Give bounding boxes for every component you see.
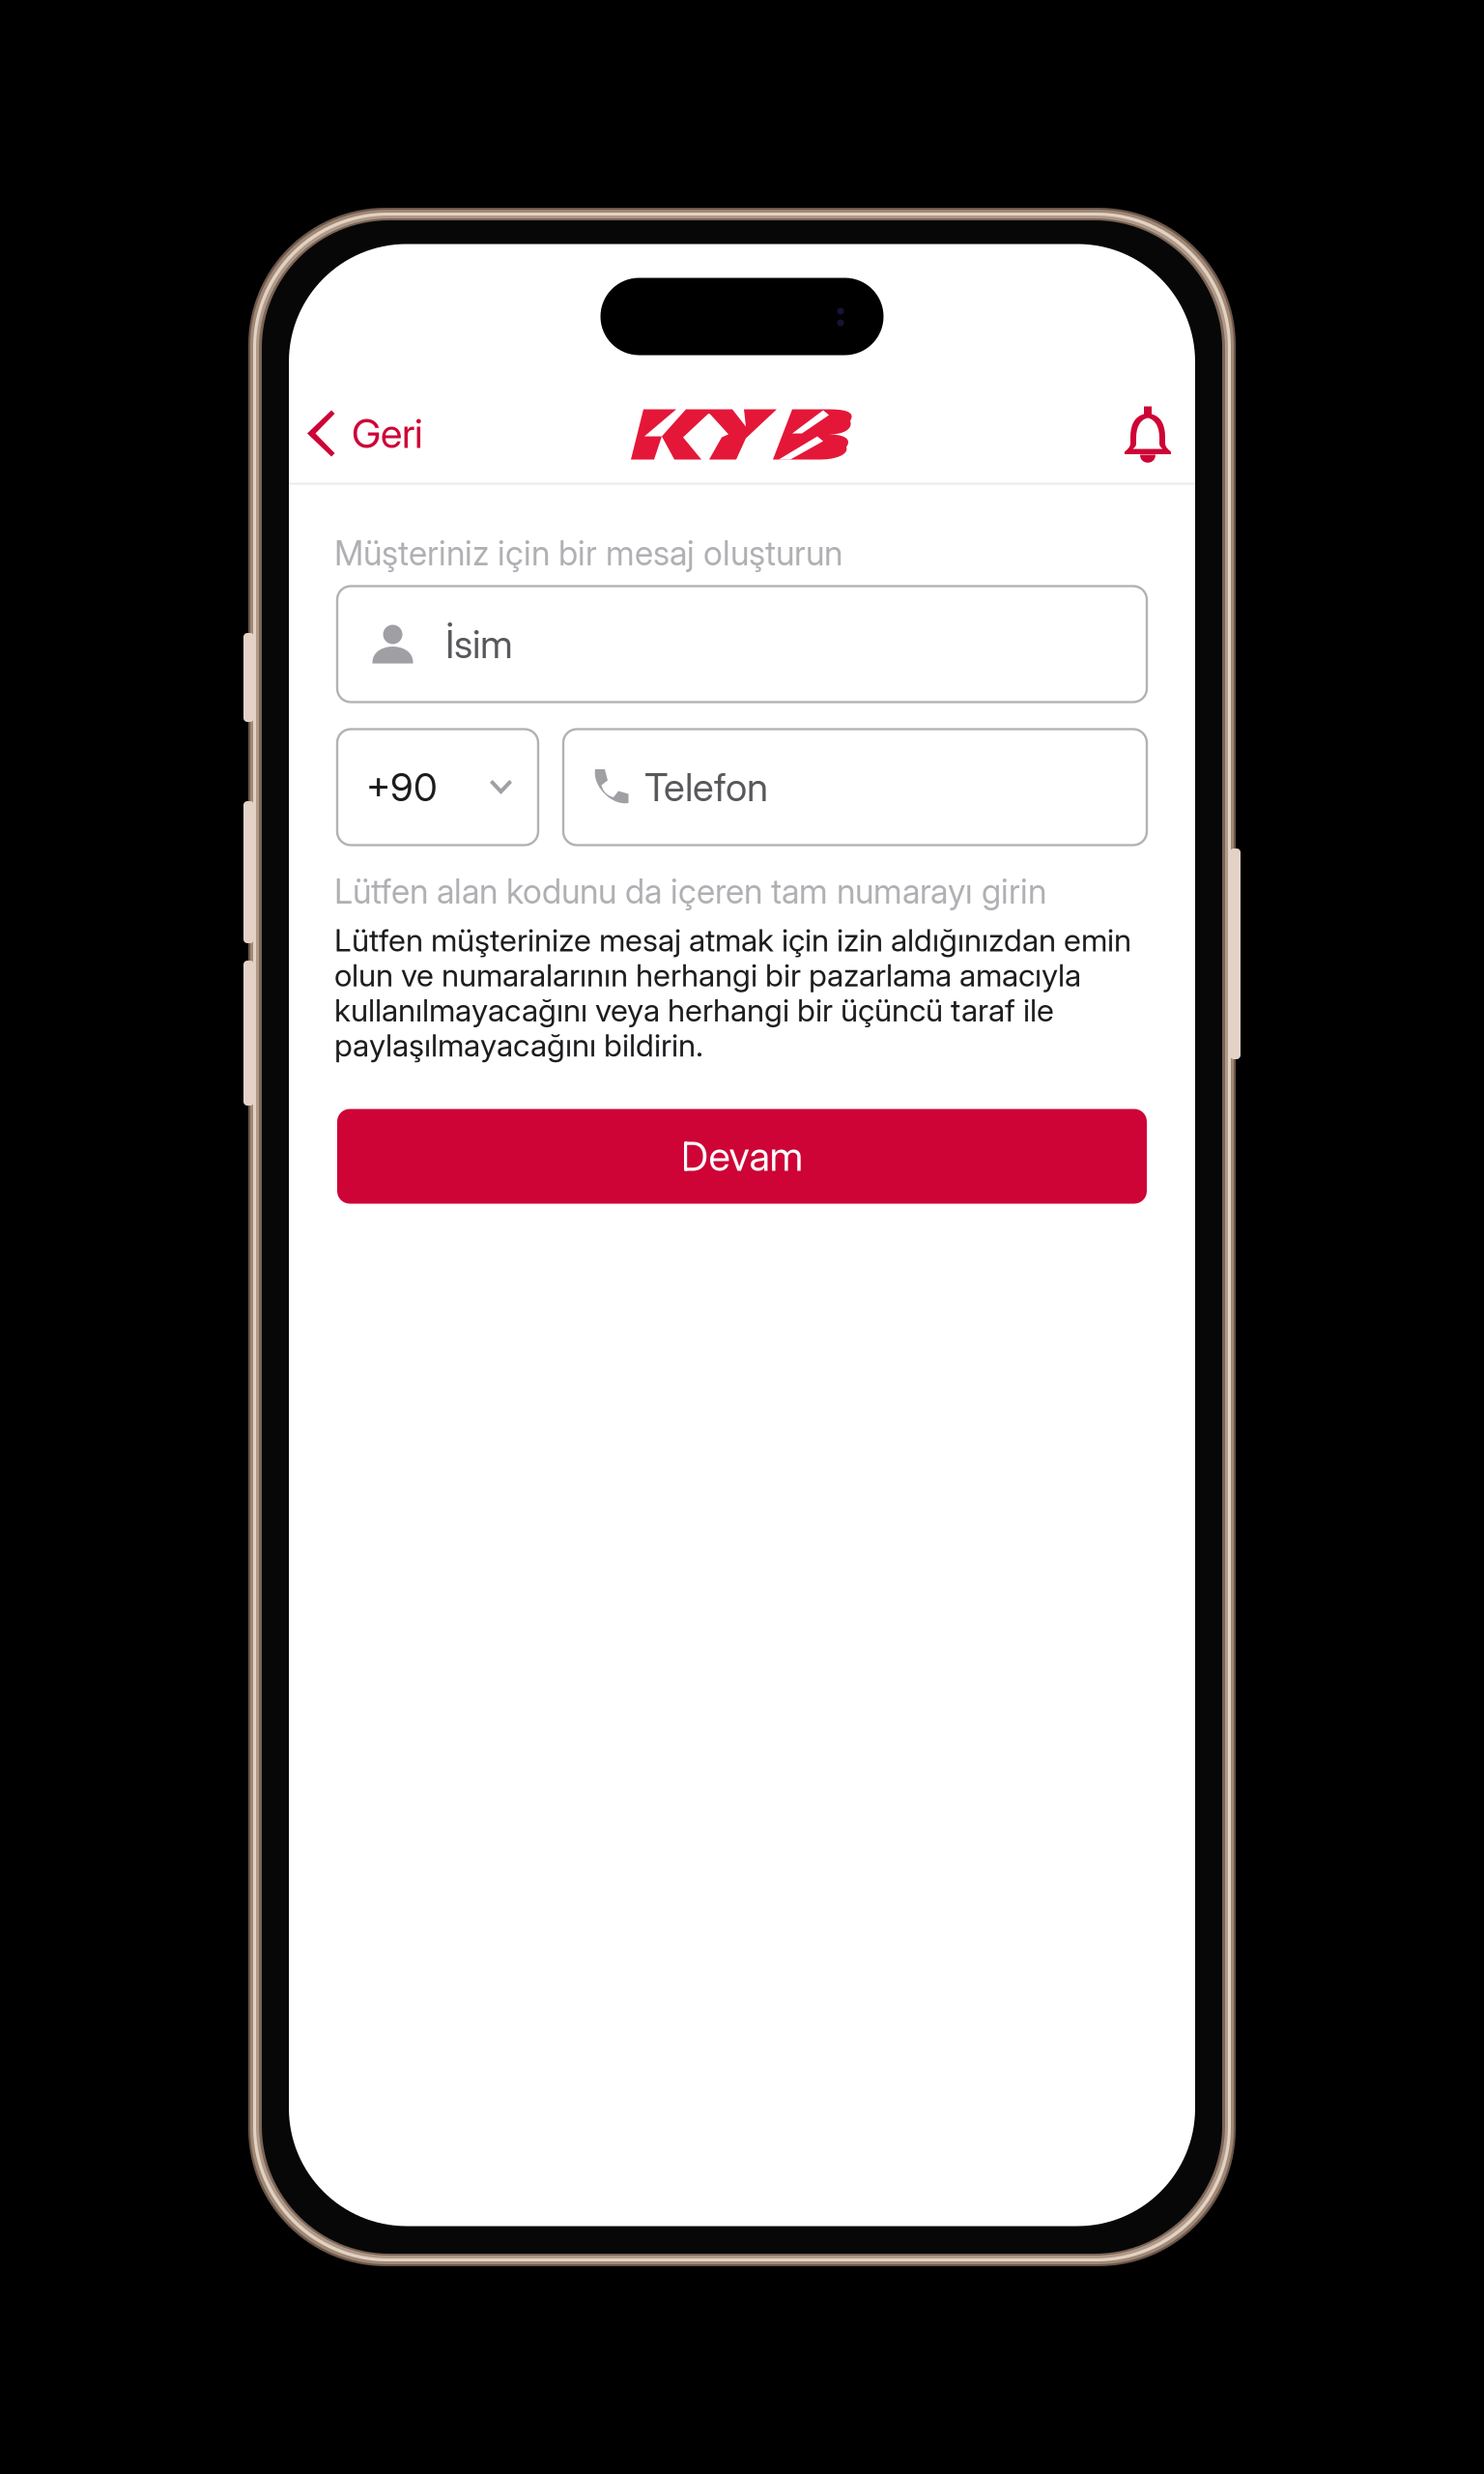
button[interactable]: Devam (337, 1109, 1147, 1204)
staticText: Geri (352, 409, 423, 458)
staticText: İsim (445, 621, 513, 667)
button[interactable]: İsim (337, 586, 1147, 702)
button[interactable]: Geri (289, 381, 448, 486)
staticText: Devam (681, 1132, 803, 1180)
staticText: Lütfen müşterinize mesaj atmak için izin… (334, 921, 1131, 1064)
button[interactable]: Telefon (563, 729, 1147, 845)
staticText: +90 (366, 764, 438, 811)
staticText: Lütfen alan kodunu da içeren tam numaray… (334, 871, 1046, 912)
button[interactable]: Bildirimler (1101, 378, 1194, 483)
button[interactable]: +90 (337, 729, 538, 845)
staticText: Telefon (644, 764, 768, 811)
staticText: Müşteriniz için bir mesaj oluşturun (334, 533, 842, 573)
